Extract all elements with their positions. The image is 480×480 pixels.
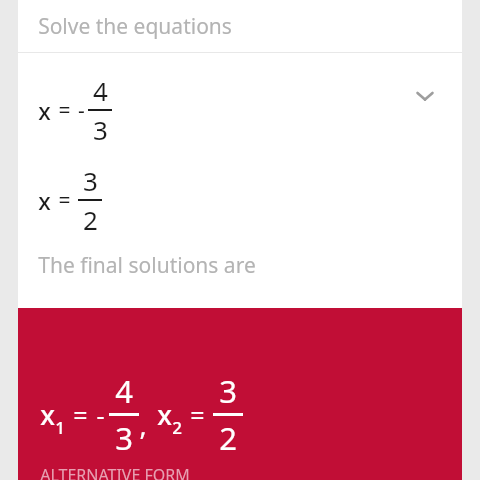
- staticText: 3: [219, 370, 237, 412]
- staticText: 3: [83, 163, 98, 198]
- staticText: =: [58, 186, 71, 215]
- staticText: =: [73, 398, 88, 432]
- staticText: 2: [83, 202, 98, 237]
- staticText: 4: [93, 73, 108, 108]
- staticText: 2: [219, 417, 237, 459]
- button[interactable]: Collapse step: [404, 75, 446, 117]
- staticText: 4: [115, 370, 133, 412]
- button[interactable]: Solve the equations: [18, 0, 462, 52]
- staticText: x: [157, 396, 172, 433]
- staticText: =: [190, 398, 205, 432]
- staticText: =: [58, 96, 71, 125]
- staticText: -: [96, 398, 105, 432]
- staticText: 3: [93, 112, 108, 147]
- staticText: x: [38, 185, 51, 216]
- button[interactable]: x: [18, 308, 462, 480]
- staticText: -: [78, 96, 85, 125]
- staticText: ,: [139, 406, 147, 443]
- staticText: x: [40, 396, 55, 433]
- staticText: 3: [115, 417, 133, 459]
- staticText: 2: [172, 416, 182, 439]
- button[interactable]: Collapse step: [18, 53, 462, 308]
- staticText: x: [38, 95, 51, 126]
- staticText: 1: [55, 416, 65, 439]
- staticText: The final solutions are: [38, 251, 256, 280]
- staticText: Solve the equations: [38, 12, 232, 41]
- staticText: ALTERNATIVE FORM: [40, 464, 190, 480]
